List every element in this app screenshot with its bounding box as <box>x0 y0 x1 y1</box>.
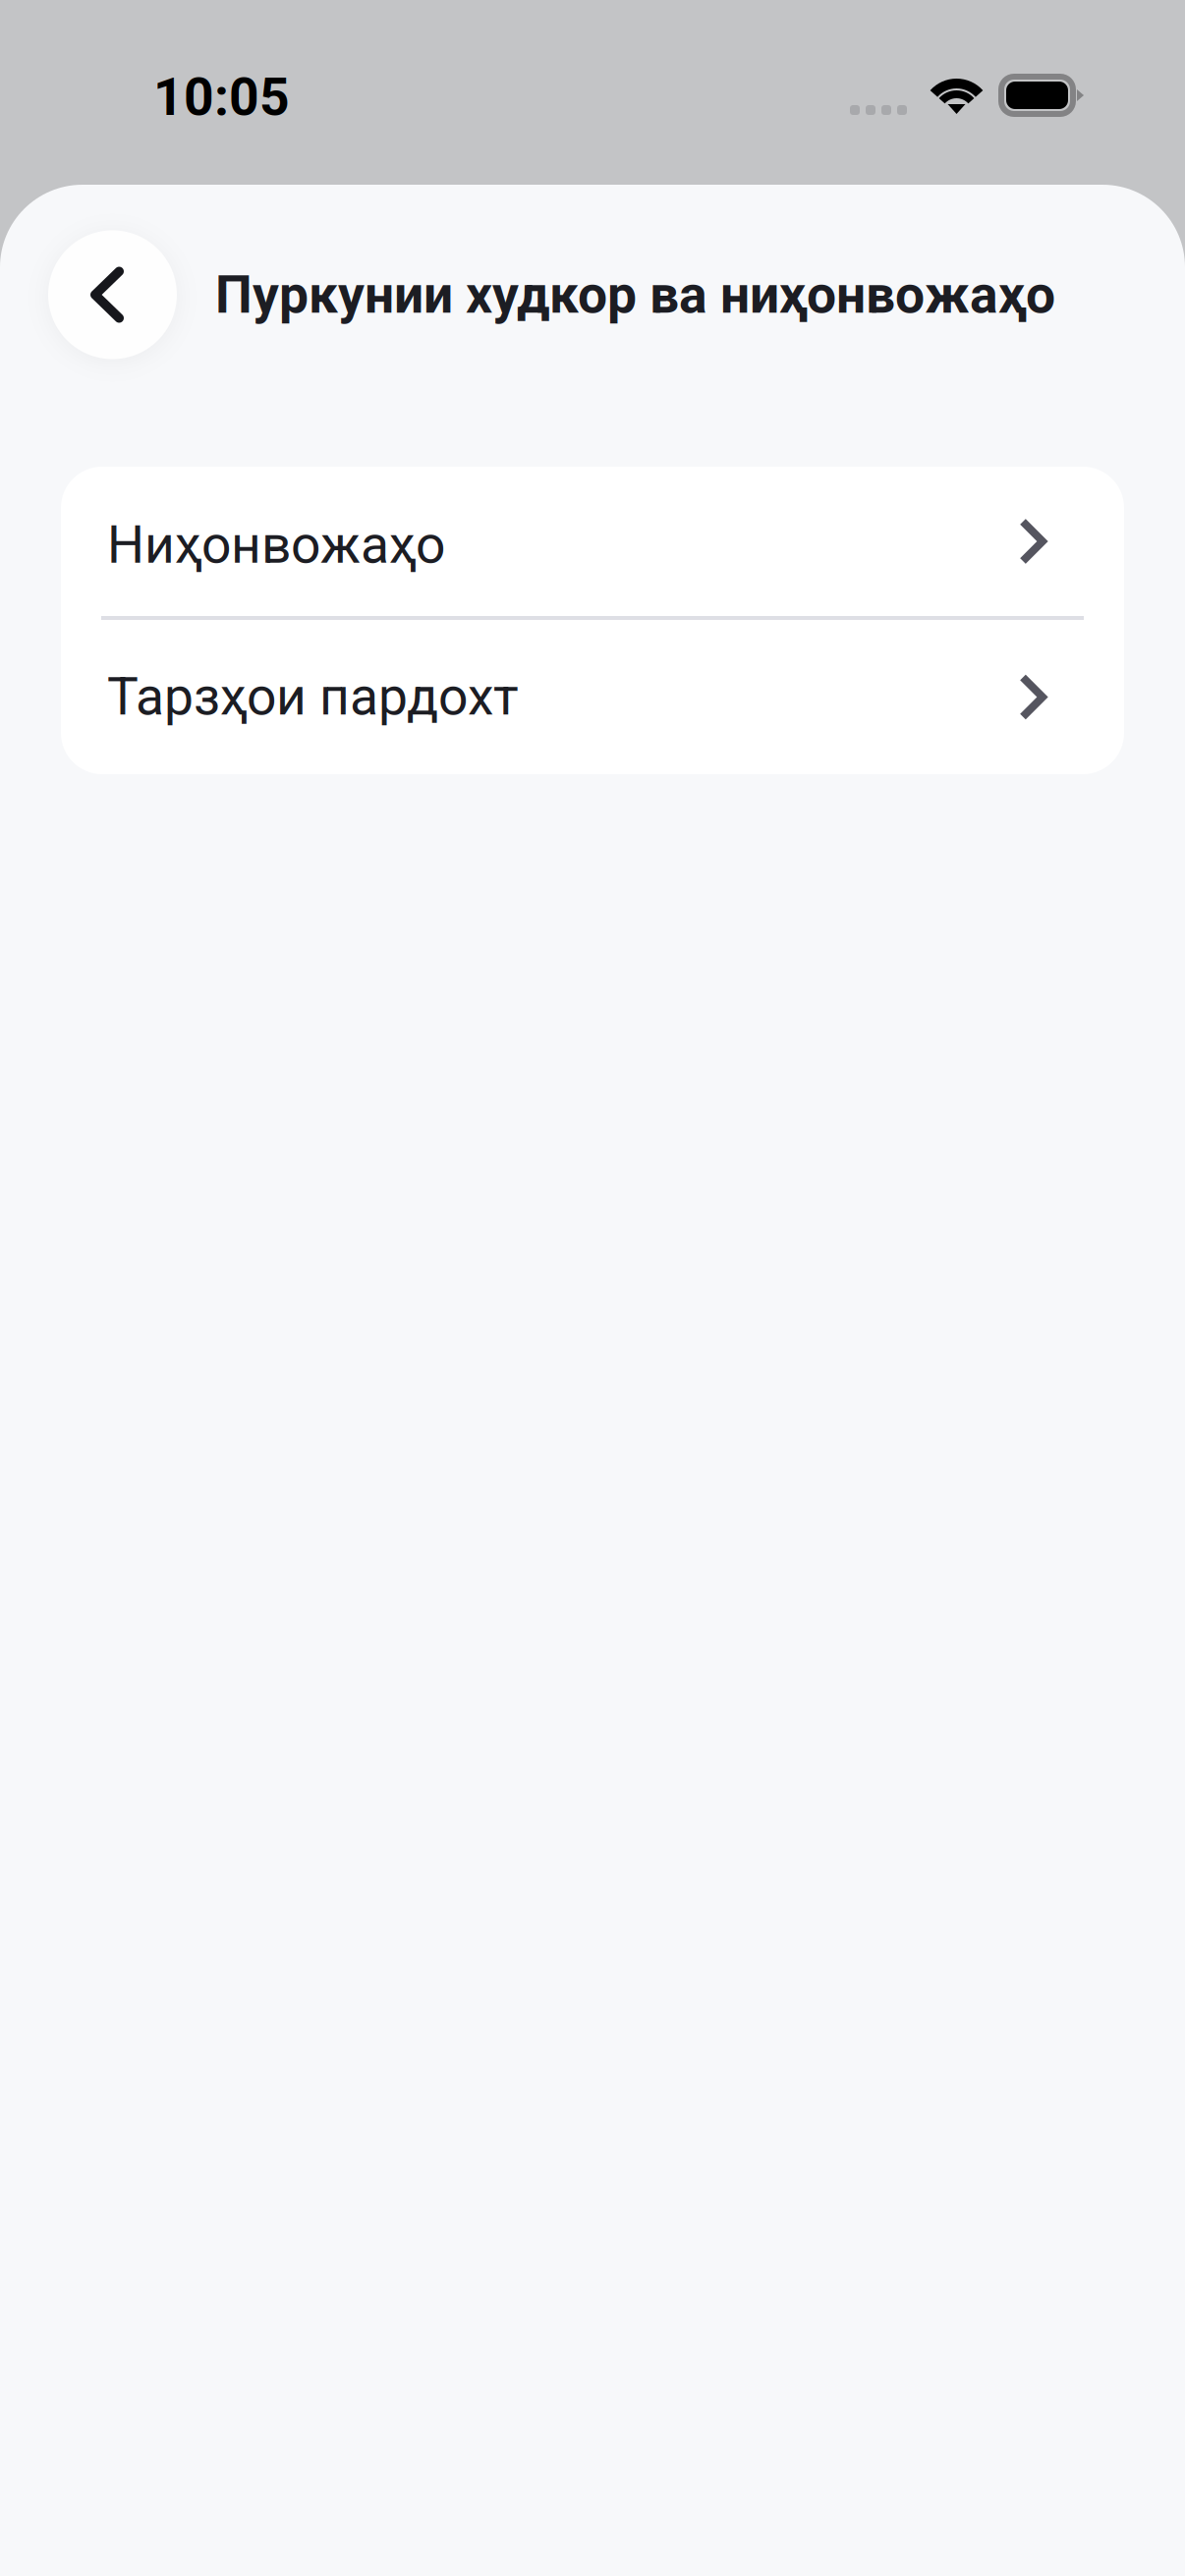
button[interactable]: Back <box>48 230 177 359</box>
staticText: Пуркунии худкор ва ниҳонвожаҳо <box>215 264 1055 325</box>
staticText: Ниҳонвожаҳо <box>107 514 445 576</box>
staticText: 10:05 <box>153 66 290 128</box>
button[interactable]: Ниҳонвожаҳо <box>61 467 1124 616</box>
button[interactable]: Тарзҳои пардохт <box>61 620 1124 774</box>
staticText: Тарзҳои пардохт <box>107 666 519 727</box>
